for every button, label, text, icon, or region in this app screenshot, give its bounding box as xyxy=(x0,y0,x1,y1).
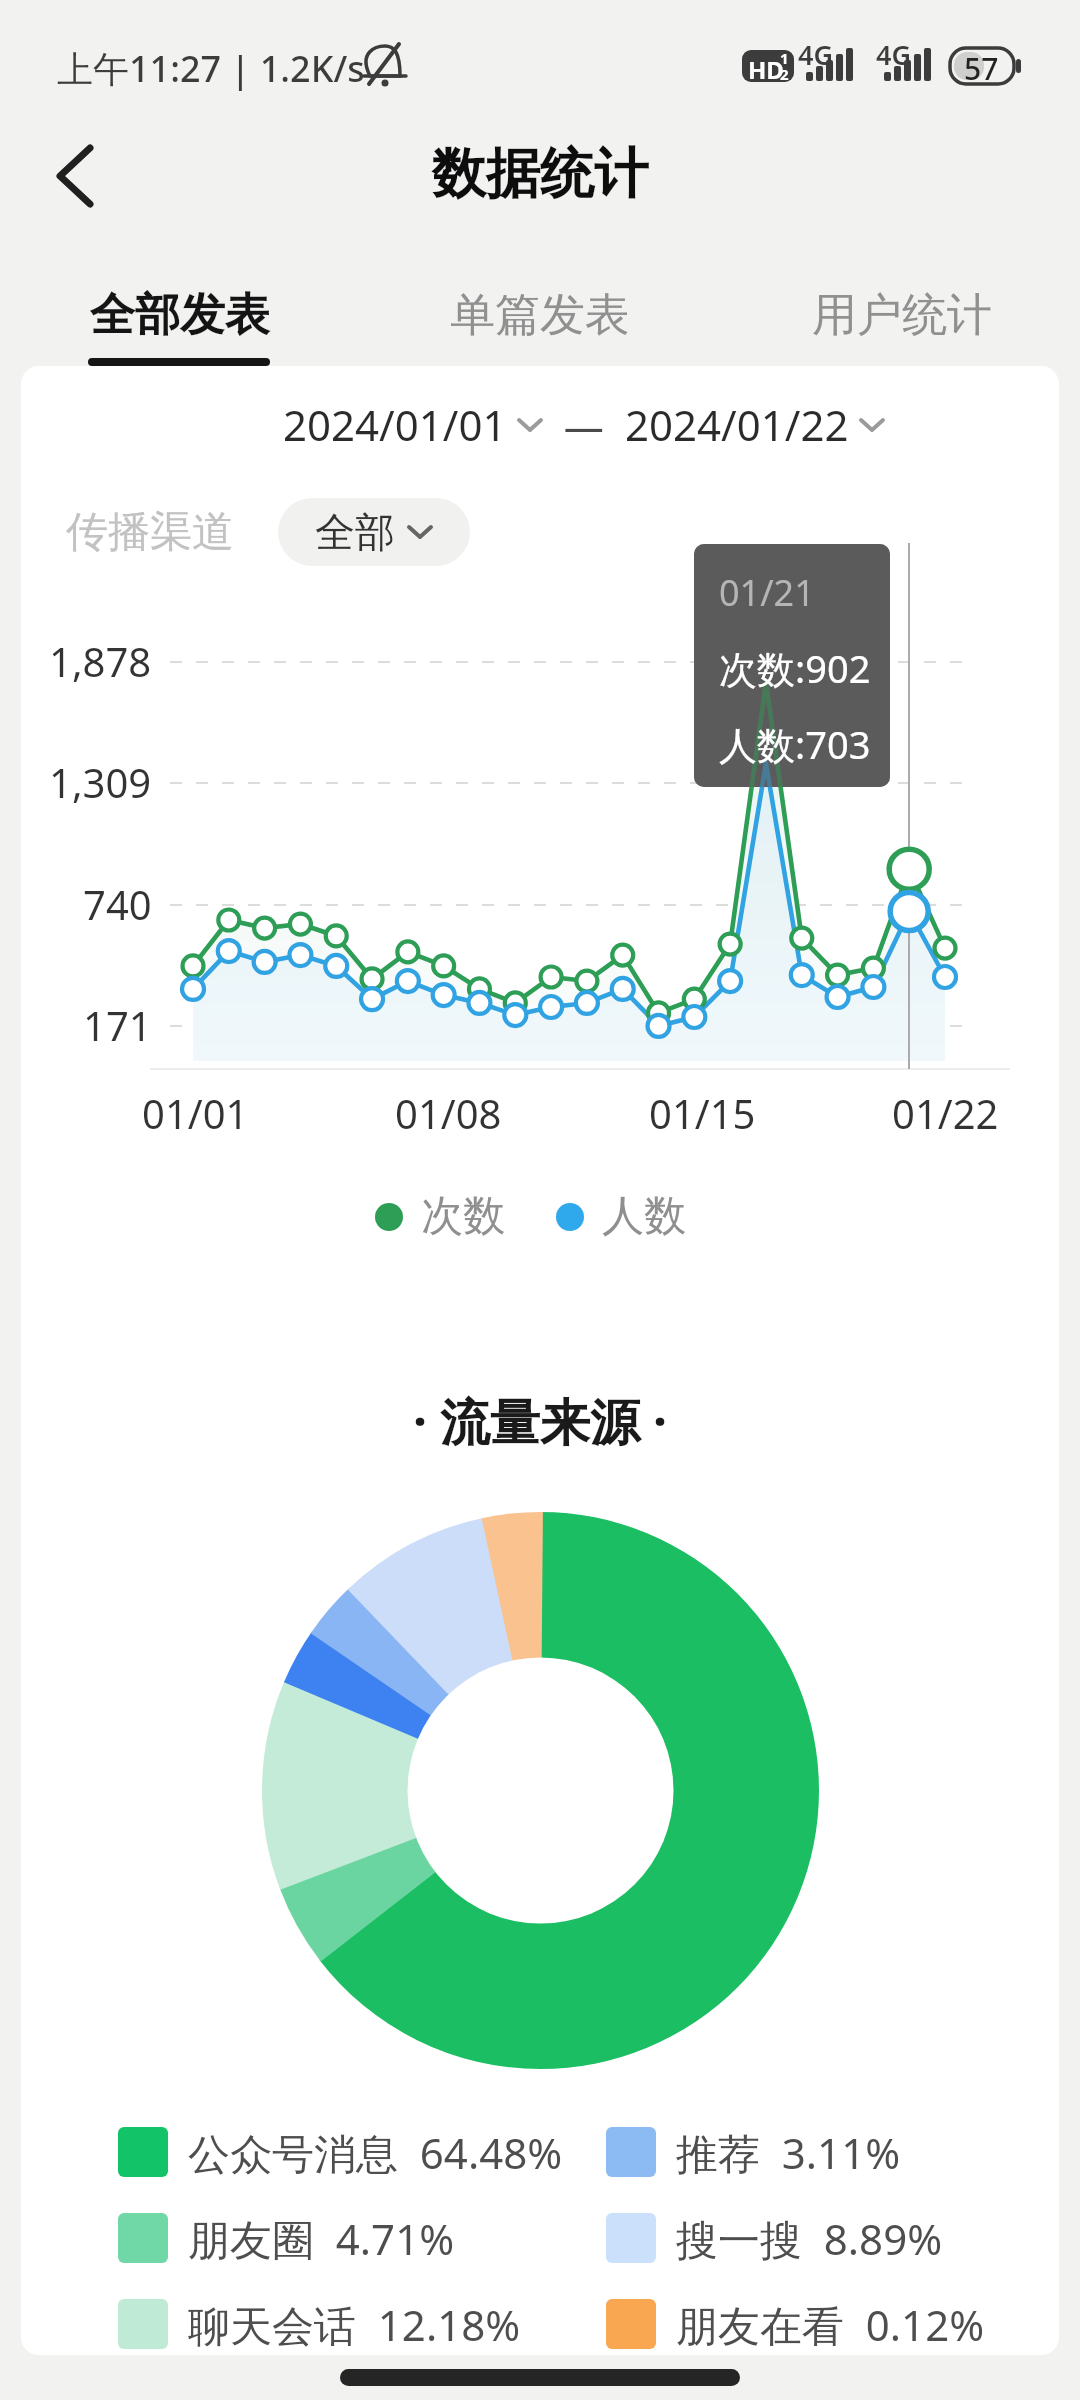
button[interactable]: 2024/01/22 xyxy=(625,396,885,453)
staticText: 数据统计 xyxy=(432,140,648,208)
button[interactable]: 全部发表 xyxy=(60,270,300,360)
staticText: 01/01 xyxy=(142,1086,249,1140)
staticText: 4G xyxy=(876,36,912,73)
button[interactable] xyxy=(36,140,116,212)
staticText: 单篇发表 xyxy=(450,287,630,344)
staticText: 聊天会话 12.18% xyxy=(188,2296,521,2353)
button[interactable]: 单篇发表 xyxy=(420,270,660,360)
staticText: 用户统计 xyxy=(812,287,992,344)
staticText: 推荐 3.11% xyxy=(676,2124,901,2181)
staticText: — xyxy=(543,398,625,452)
staticText: 4G xyxy=(798,36,834,73)
staticText: 1,878 xyxy=(49,634,152,688)
button[interactable]: 用户统计 xyxy=(782,270,1022,360)
staticText: 人数 xyxy=(602,1190,686,1243)
staticText: 全部 xyxy=(315,507,395,557)
staticText: 01/21 xyxy=(719,568,815,617)
button[interactable]: 全部 xyxy=(278,498,470,566)
staticText: 搜一搜 8.89% xyxy=(676,2210,943,2267)
staticText: 171 xyxy=(83,998,152,1052)
staticText: 1 xyxy=(780,48,789,68)
staticText: 01/15 xyxy=(649,1086,756,1140)
staticText: 朋友圈 4.71% xyxy=(188,2210,455,2267)
staticText: · 流量来源 · xyxy=(413,1387,668,1455)
staticText: 740 xyxy=(83,877,152,931)
staticText: 01/08 xyxy=(395,1086,502,1140)
staticText: 01/22 xyxy=(892,1086,999,1140)
staticText: HD xyxy=(748,53,784,86)
staticText: 上午11:27 | 1.2K/s xyxy=(57,44,365,93)
staticText: 人数:703 xyxy=(719,718,871,770)
staticText: 次数 xyxy=(421,1190,505,1243)
staticText: 次数:902 xyxy=(719,642,871,694)
staticText: 1,309 xyxy=(49,755,152,809)
staticText: 2 xyxy=(780,64,789,84)
staticText: 朋友在看 0.12% xyxy=(676,2296,985,2353)
staticText: 公众号消息 64.48% xyxy=(188,2124,563,2181)
staticText: 2024/01/22 xyxy=(625,396,849,453)
staticText: 2024/01/01 xyxy=(283,396,507,453)
staticText: 57 xyxy=(964,48,999,89)
staticText: 传播渠道 xyxy=(66,506,234,559)
staticText: 全部发表 xyxy=(90,287,270,344)
button[interactable]: 2024/01/01 xyxy=(283,396,543,453)
